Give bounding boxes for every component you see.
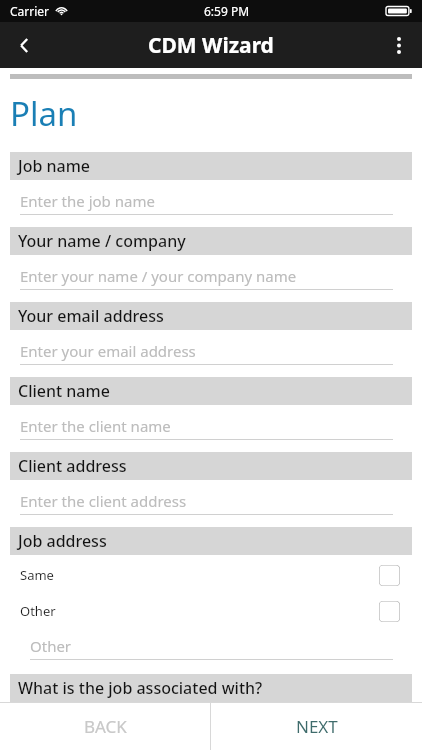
button[interactable]: Other [20, 593, 400, 629]
staticText: Job address [18, 530, 107, 552]
button[interactable]: BACK [0, 702, 210, 750]
staticText: CDM Wizard [148, 31, 274, 60]
button[interactable]: NEXT [211, 702, 422, 750]
button[interactable]: Enter your name / your company name [20, 263, 393, 290]
staticText: Enter your name / your company name [20, 266, 297, 286]
staticText: Other [30, 636, 72, 656]
button[interactable]: Enter the job name [20, 188, 393, 215]
staticText: Enter your email address [20, 341, 196, 361]
button[interactable]: Other [30, 633, 393, 660]
staticText: Your email address [18, 305, 164, 327]
staticText: Enter the client address [20, 491, 187, 511]
staticText: 6:59 PM [204, 3, 250, 19]
staticText: BACK [84, 715, 127, 738]
button[interactable]: More options [376, 22, 422, 68]
staticText: NEXT [296, 715, 338, 738]
staticText: Job name [18, 155, 91, 177]
staticText: Enter the client name [20, 416, 171, 436]
staticText: Client name [18, 380, 110, 402]
button[interactable]: Same [20, 557, 400, 593]
staticText: What is the job associated with? [18, 677, 263, 699]
staticText: Same [20, 566, 54, 584]
staticText: Other [20, 602, 56, 620]
staticText: Your name / company [18, 230, 186, 252]
staticText: Client address [18, 455, 127, 477]
button[interactable]: Enter the client name [20, 413, 393, 440]
staticText: Enter the job name [20, 191, 155, 211]
button[interactable]: Back [0, 22, 48, 68]
button[interactable]: Enter your email address [20, 338, 393, 365]
button[interactable]: Enter the client address [20, 488, 393, 515]
staticText: Carrier [10, 3, 50, 19]
staticText: Plan [10, 91, 78, 136]
